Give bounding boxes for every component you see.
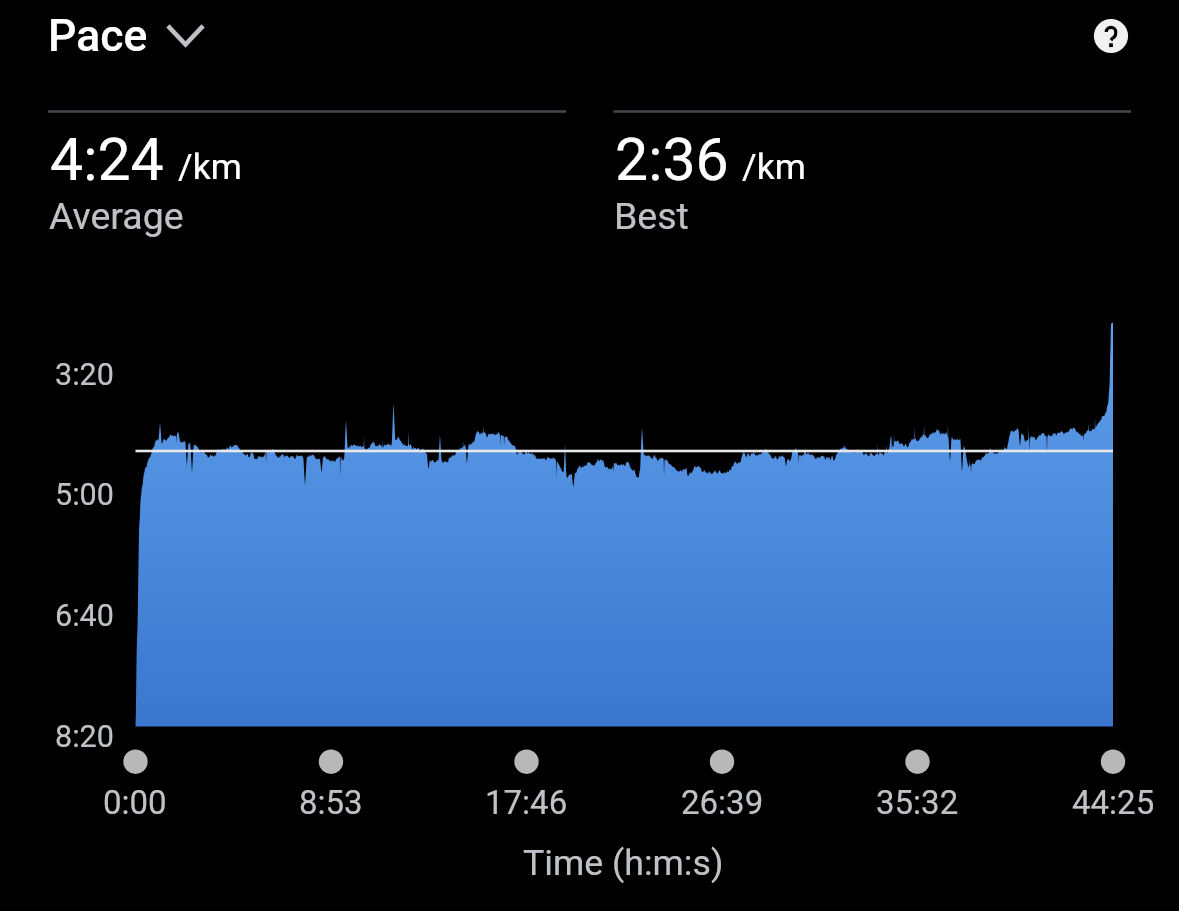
staticText: /km <box>178 146 242 188</box>
staticText: 0:00 <box>103 783 167 822</box>
staticText: Average <box>49 194 184 238</box>
staticText: 8:53 <box>299 783 363 822</box>
staticText: 4:24 <box>50 125 164 194</box>
staticText: 44:25 <box>1072 783 1155 822</box>
staticText: Best <box>614 194 689 238</box>
staticText: 35:32 <box>876 783 959 822</box>
staticText: 17:46 <box>485 783 568 822</box>
staticText: 2:36 <box>615 125 729 194</box>
staticText: Time (h:m:s) <box>523 842 724 884</box>
staticText: Pace <box>48 10 148 62</box>
button[interactable]: Help <box>1083 8 1138 63</box>
staticText: 6:40 <box>55 598 114 634</box>
staticText: /km <box>742 146 806 188</box>
staticText: 5:00 <box>55 477 114 513</box>
staticText: 8:20 <box>55 719 114 755</box>
staticText: 26:39 <box>681 783 764 822</box>
staticText: 3:20 <box>55 357 114 393</box>
button[interactable]: Pace <box>36 2 220 66</box>
